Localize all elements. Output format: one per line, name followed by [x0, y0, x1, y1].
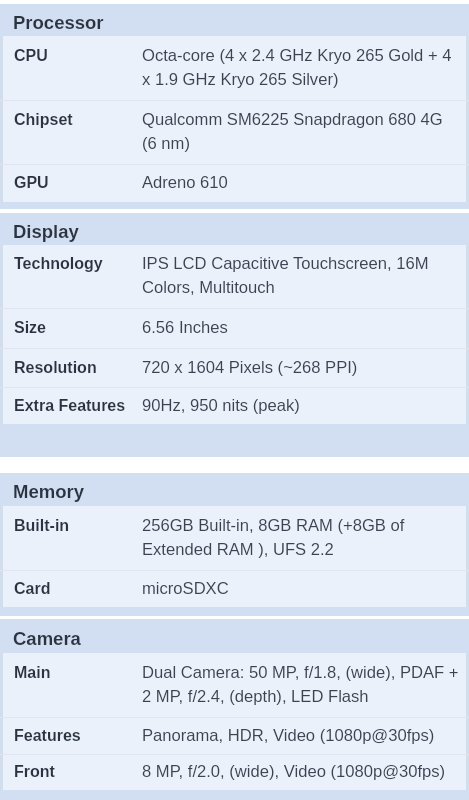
staticText: Main: [14, 659, 142, 683]
staticText: Front: [14, 758, 142, 782]
button[interactable]: Technology: [0, 245, 469, 308]
staticText: Display: [13, 221, 79, 242]
button[interactable]: Memory: [0, 473, 469, 506]
staticText: Built-in: [14, 512, 142, 536]
staticText: Qualcomm SM6225 Snapdragon 680 4G (6 nm): [142, 106, 460, 154]
staticText: Features: [14, 722, 142, 746]
staticText: 6.56 Inches: [142, 314, 228, 338]
staticText: 256GB Built-in, 8GB RAM (+8GB of Extende…: [142, 512, 460, 560]
staticText: Card: [14, 575, 142, 599]
button[interactable]: Features: [0, 718, 469, 754]
button[interactable]: Resolution: [0, 349, 469, 387]
staticText: Extra Features: [14, 392, 142, 416]
button[interactable]: Main: [0, 653, 469, 717]
staticText: 90Hz, 950 nits (peak): [142, 392, 300, 416]
staticText: GPU: [14, 169, 142, 193]
staticText: 8 MP, f/2.0, (wide), Video (1080p@30fps): [142, 758, 446, 782]
button[interactable]: Extra Features: [0, 388, 469, 424]
staticText: Processor: [13, 12, 104, 33]
button[interactable]: Card: [0, 571, 469, 607]
staticText: microSDXC: [142, 575, 229, 599]
button[interactable]: Chipset: [0, 101, 469, 164]
staticText: Adreno 610: [142, 169, 228, 193]
button[interactable]: Processor: [0, 4, 469, 36]
staticText: Chipset: [14, 106, 142, 130]
staticText: Technology: [14, 250, 142, 274]
button[interactable]: Display: [0, 213, 469, 245]
staticText: Octa-core (4 x 2.4 GHz Kryo 265 Gold + 4…: [142, 42, 460, 90]
staticText: Resolution: [14, 354, 142, 378]
button[interactable]: GPU: [0, 165, 469, 202]
button[interactable]: Camera: [0, 619, 469, 653]
staticText: Dual Camera: 50 MP, f/1.8, (wide), PDAF …: [142, 659, 460, 707]
button[interactable]: Front: [0, 755, 469, 790]
staticText: Panorama, HDR, Video (1080p@30fps): [142, 722, 435, 746]
staticText: IPS LCD Capacitive Touchscreen, 16M Colo…: [142, 250, 460, 298]
button[interactable]: Built-in: [0, 506, 469, 570]
staticText: 720 x 1604 Pixels (~268 PPI): [142, 354, 358, 378]
staticText: Size: [14, 314, 142, 338]
staticText: Camera: [13, 628, 81, 649]
button[interactable]: CPU: [0, 36, 469, 100]
button[interactable]: Size: [0, 309, 469, 348]
staticText: CPU: [14, 42, 142, 66]
staticText: Memory: [13, 481, 84, 502]
